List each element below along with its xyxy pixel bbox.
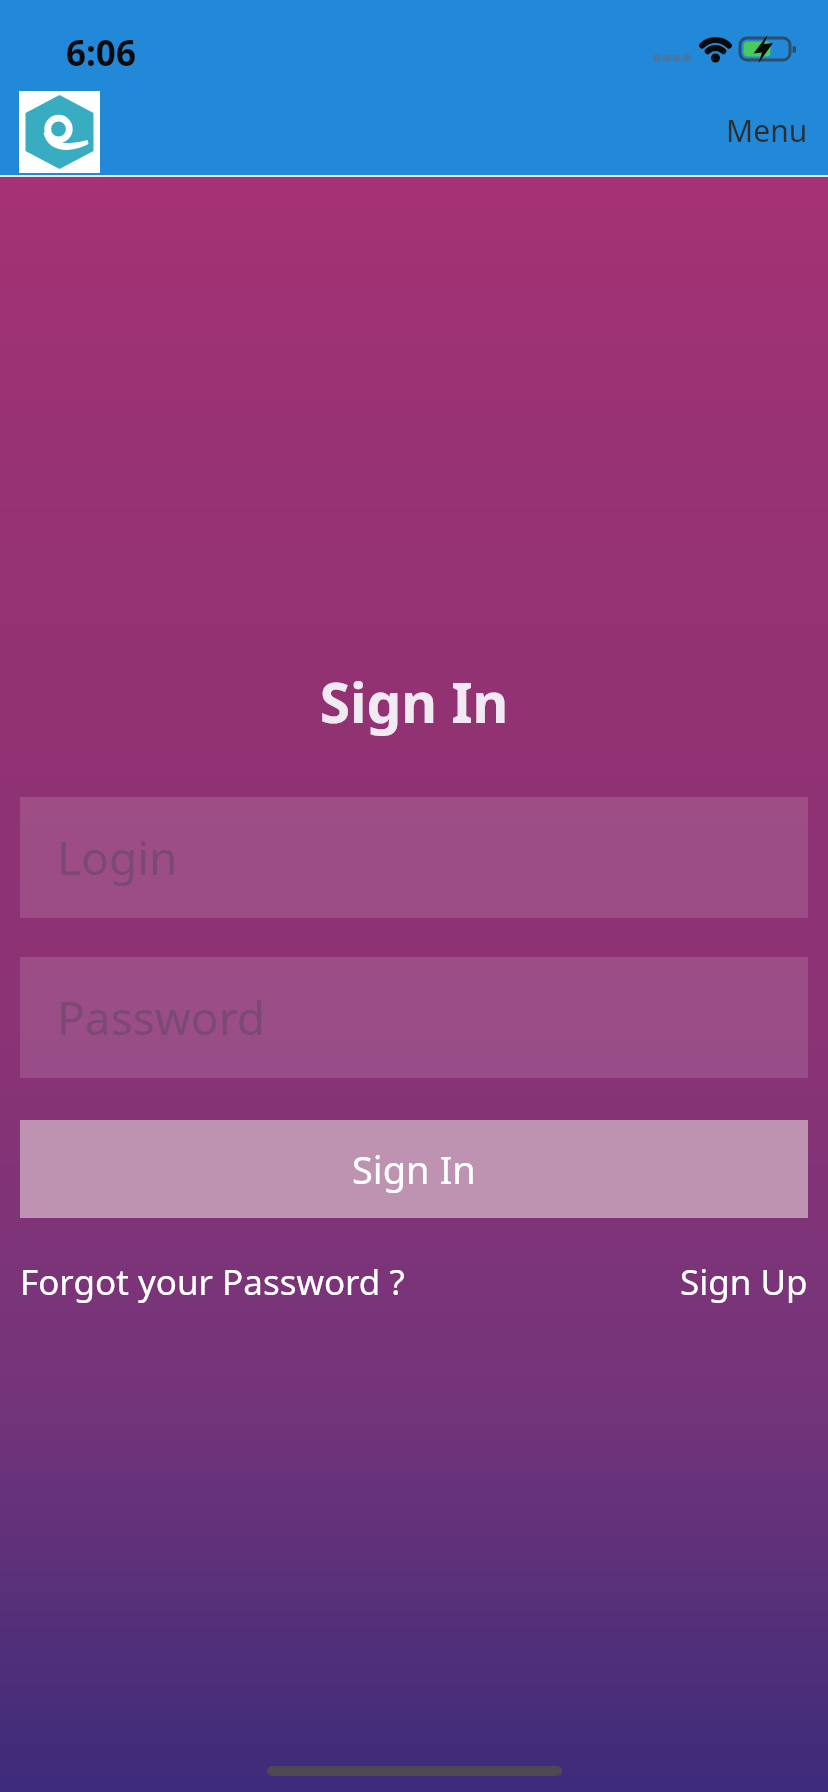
button[interactable]: Forgot your Password ? [20, 1258, 405, 1306]
staticText: Forgot your Password ? [20, 1258, 405, 1306]
button[interactable]: Sign Up [680, 1258, 808, 1306]
staticText: Password [57, 986, 266, 1049]
staticText: Sign Up [680, 1258, 808, 1306]
button[interactable]: Password [20, 957, 808, 1078]
button[interactable]: Login [20, 797, 808, 918]
staticText: Login [57, 826, 178, 889]
staticText: Menu [726, 110, 808, 151]
staticText: 6:06 [66, 29, 136, 77]
button[interactable] [19, 91, 100, 173]
button[interactable]: Sign In [20, 1120, 808, 1218]
button[interactable]: Menu [726, 110, 808, 151]
staticText: Sign In [352, 1143, 476, 1195]
staticText: Sign In [0, 664, 828, 739]
